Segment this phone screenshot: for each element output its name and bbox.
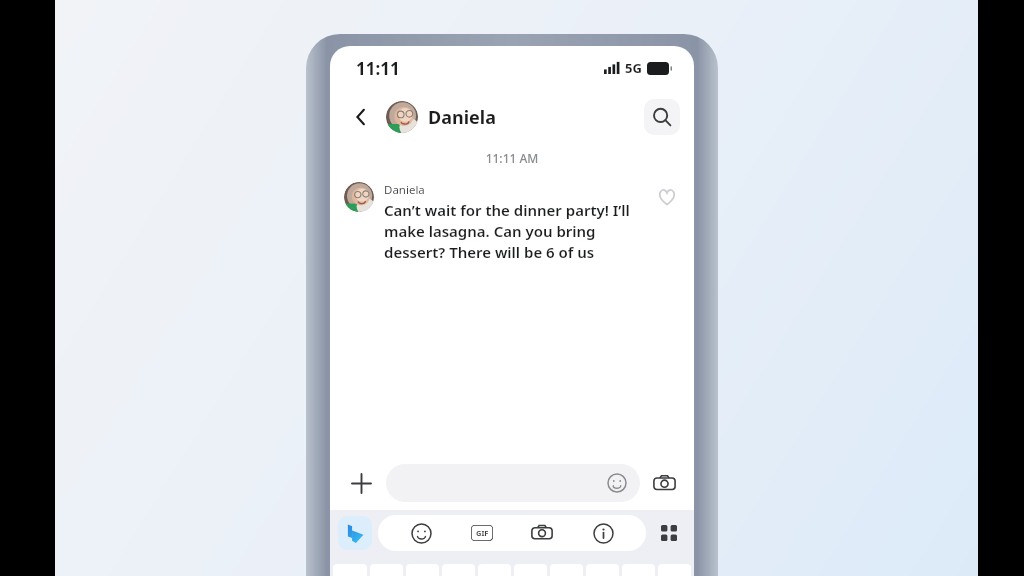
button[interactable]: Emoji xyxy=(605,471,629,495)
button[interactable]: Like xyxy=(652,182,682,212)
button[interactable]: Bing xyxy=(338,516,372,550)
button[interactable]: Search xyxy=(644,99,680,135)
button[interactable]: Camera xyxy=(648,467,680,499)
staticText: Daniela xyxy=(428,105,496,130)
staticText: 11:11 xyxy=(356,57,400,80)
button[interactable]: Daniela xyxy=(386,101,644,133)
staticText: 5G xyxy=(625,59,642,77)
button[interactable]: Message input xyxy=(386,464,640,502)
button[interactable]: More apps xyxy=(652,516,686,550)
button[interactable]: Daniela xyxy=(344,182,682,263)
button[interactable]: GIF xyxy=(465,516,499,550)
staticText: 11:11 AM xyxy=(330,150,694,166)
staticText: GIF xyxy=(476,528,489,538)
button[interactable]: Camera xyxy=(525,516,559,550)
button[interactable]: Emoji xyxy=(404,516,438,550)
staticText: Can’t wait for the dinner party! I’ll ma… xyxy=(384,200,630,263)
button[interactable]: Back xyxy=(344,100,378,134)
button[interactable]: Info xyxy=(586,516,620,550)
staticText: Daniela xyxy=(384,182,425,198)
button[interactable]: Add attachment xyxy=(344,466,378,500)
